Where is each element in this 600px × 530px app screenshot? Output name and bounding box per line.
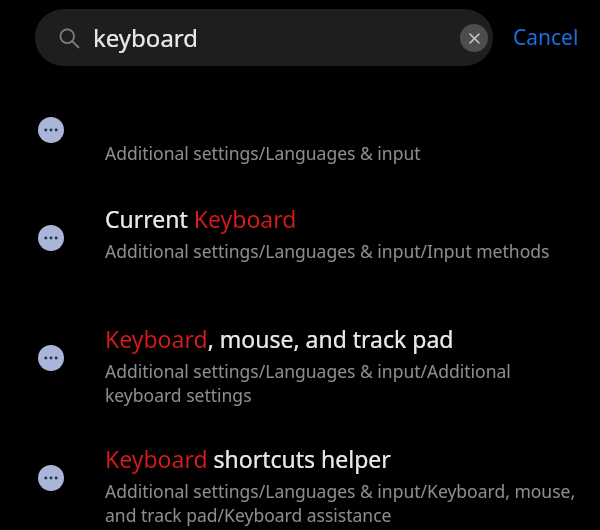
staticText: Current Keyboard xyxy=(105,203,297,234)
staticText: Additional settings/Languages & input/Ke… xyxy=(105,479,585,527)
staticText: Additional settings/Languages & input/In… xyxy=(105,239,550,263)
button[interactable]: Clear search xyxy=(460,24,488,52)
button[interactable]: Keyboard, mouse, and track pad xyxy=(0,305,600,425)
staticText: Keyboard, mouse, and track pad xyxy=(105,323,454,354)
staticText: keyboard xyxy=(93,21,460,54)
button[interactable]: Keyboard shortcuts helper xyxy=(0,425,600,530)
staticText: Additional settings/Languages & input/Ad… xyxy=(105,359,585,407)
button[interactable]: Cancel xyxy=(493,9,593,66)
staticText: Cancel xyxy=(513,23,579,52)
button[interactable]: Languages & input xyxy=(0,75,600,185)
staticText: Additional settings/Languages & input xyxy=(105,141,421,165)
staticText: Keyboard shortcuts helper xyxy=(105,443,391,474)
button[interactable]: keyboard xyxy=(35,9,493,66)
button[interactable]: Current Keyboard xyxy=(0,185,600,305)
